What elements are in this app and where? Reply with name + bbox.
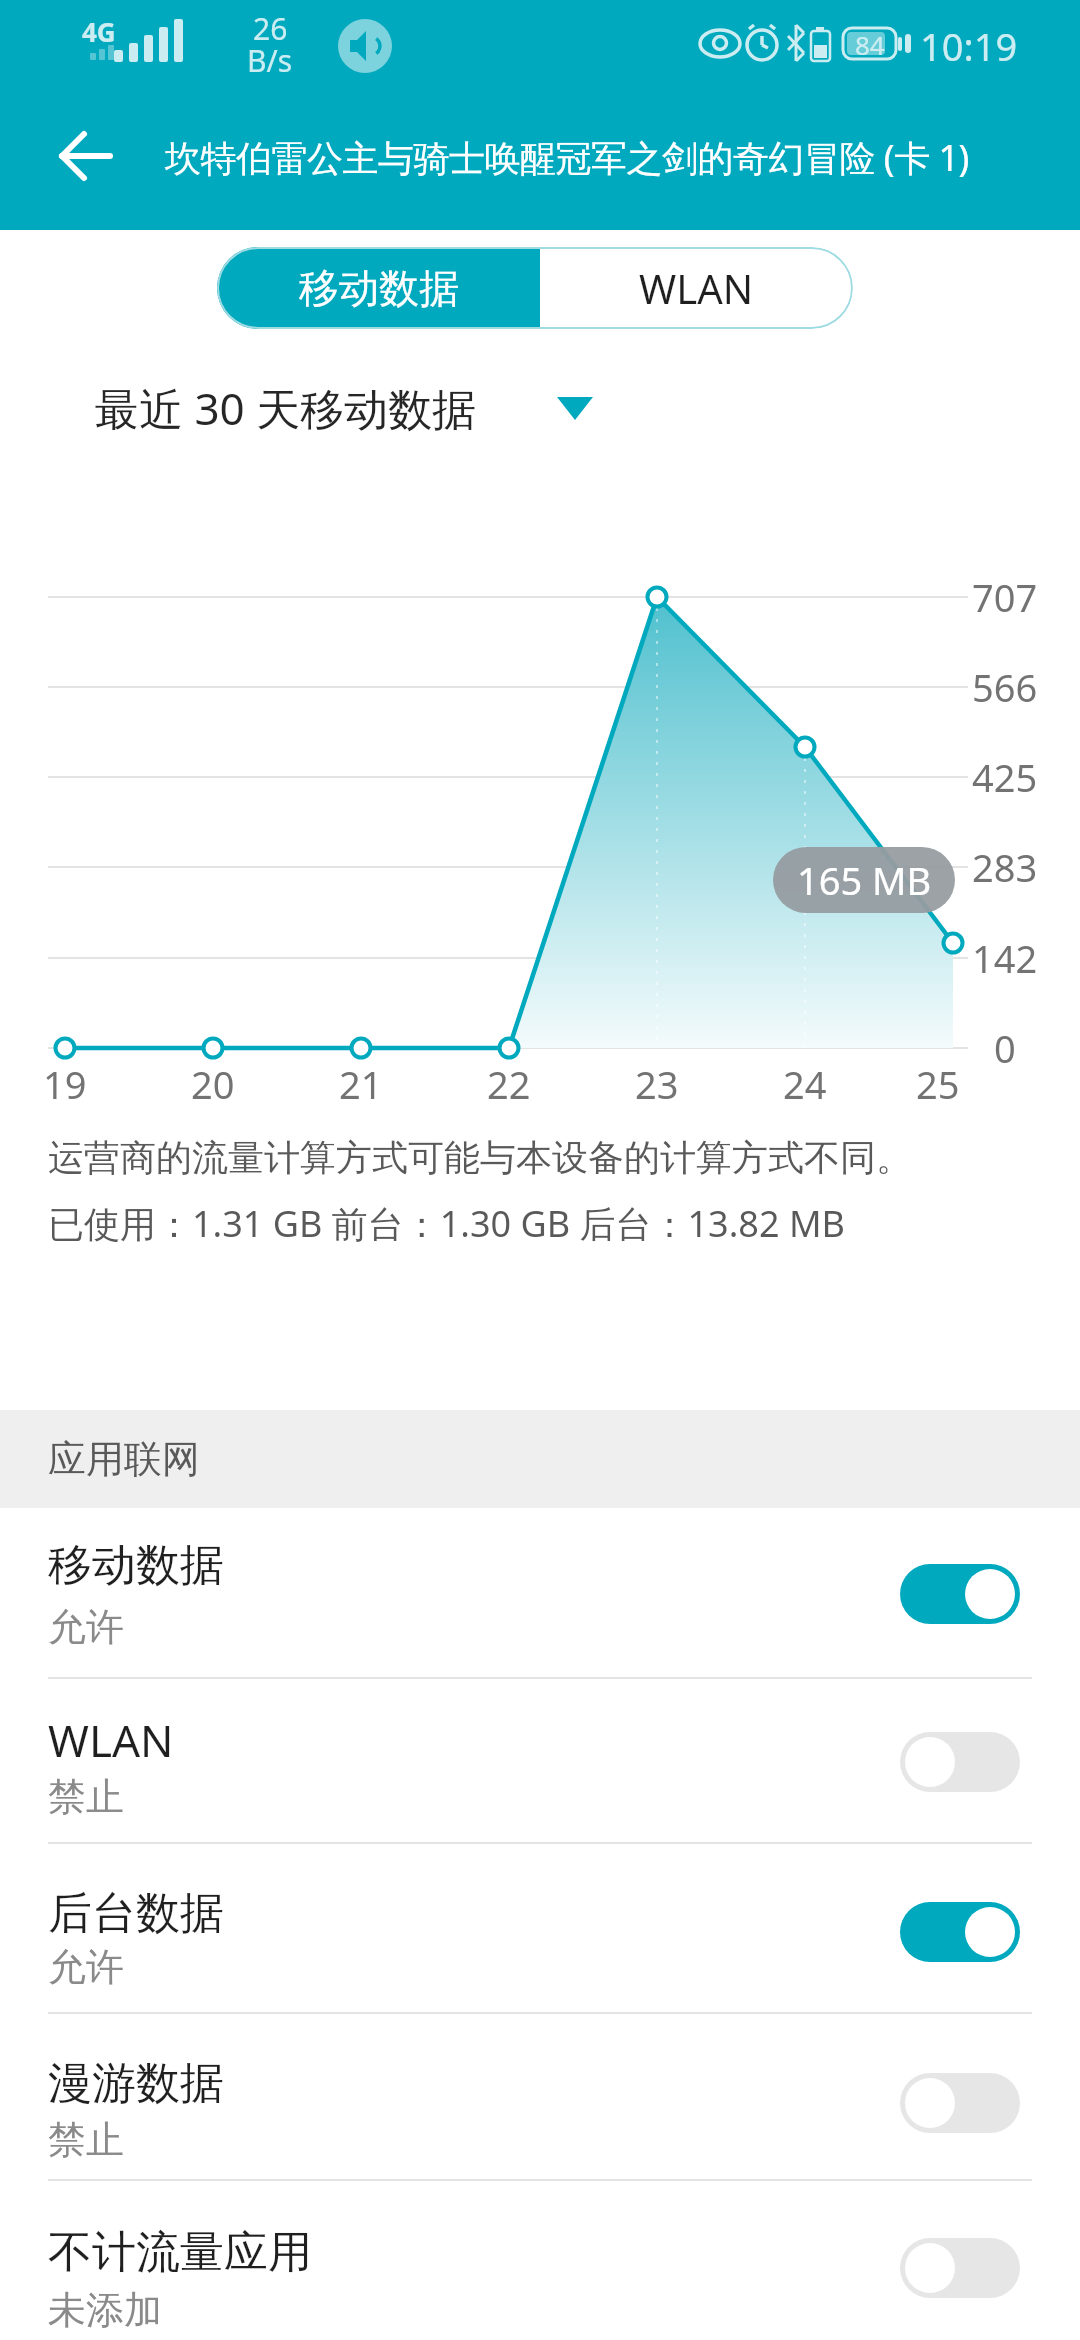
button[interactable]: 漫游数据 bbox=[0, 2013, 1080, 2180]
staticText: 后台数据 bbox=[48, 1886, 224, 1941]
button[interactable] bbox=[900, 1564, 1020, 1624]
staticText: 允许 bbox=[48, 1943, 124, 1991]
button[interactable]: 移动数据 bbox=[0, 1508, 1080, 1678]
staticText: 84 bbox=[855, 27, 885, 62]
staticText: 应用联网 bbox=[48, 1435, 200, 1483]
staticText: 不计流量应用 bbox=[48, 2225, 312, 2280]
staticText: 24 bbox=[783, 1058, 827, 1108]
staticText: WLAN bbox=[639, 261, 754, 315]
staticText: 707 bbox=[972, 571, 1038, 623]
staticText: 20 bbox=[191, 1058, 235, 1108]
staticText: 142 bbox=[972, 932, 1038, 984]
staticText: 未添加 bbox=[48, 2286, 162, 2334]
staticText: 最近 30 天移动数据 bbox=[95, 378, 477, 436]
staticText: 25 bbox=[916, 1058, 960, 1108]
staticText: 移动数据 bbox=[299, 263, 459, 313]
staticText: 已使用：1.31 GB 前台：1.30 GB 后台：13.82 MB bbox=[48, 1199, 845, 1248]
staticText: 4G bbox=[82, 14, 116, 48]
staticText: 10:19 bbox=[920, 20, 1018, 68]
button[interactable]: WLAN bbox=[540, 247, 853, 329]
staticText: 0 bbox=[994, 1022, 1016, 1074]
staticText: 425 bbox=[972, 751, 1038, 803]
staticText: 禁止 bbox=[48, 2116, 124, 2164]
button[interactable]: 不计流量应用 bbox=[0, 2180, 1080, 2340]
staticText: 283 bbox=[972, 841, 1038, 893]
staticText: 165 MB bbox=[797, 854, 932, 906]
button[interactable]: 移动数据 bbox=[217, 247, 540, 329]
button[interactable]: WLAN bbox=[0, 1678, 1080, 1843]
staticText: 23 bbox=[635, 1058, 679, 1108]
button[interactable] bbox=[900, 1902, 1020, 1962]
button[interactable] bbox=[900, 1732, 1020, 1792]
staticText: 19 bbox=[43, 1058, 87, 1108]
staticText: 禁止 bbox=[48, 1773, 124, 1821]
staticText: 26 bbox=[253, 8, 288, 44]
staticText: 漫游数据 bbox=[48, 2056, 224, 2111]
staticText: B/s bbox=[247, 40, 293, 74]
button[interactable]: 后台数据 bbox=[0, 1843, 1080, 2013]
button[interactable] bbox=[900, 2238, 1020, 2298]
staticText: 22 bbox=[487, 1058, 531, 1108]
button[interactable] bbox=[900, 2073, 1020, 2133]
staticText: 运营商的流量计算方式可能与本设备的计算方式不同。 bbox=[48, 1135, 912, 1180]
staticText: 21 bbox=[339, 1058, 383, 1108]
staticText: 566 bbox=[972, 661, 1038, 713]
staticText: WLAN bbox=[48, 1710, 174, 1770]
staticText: 坎特伯雷公主与骑士唤醒冠军之剑的奇幻冒险 (卡 1) bbox=[165, 133, 969, 182]
staticText: 移动数据 bbox=[48, 1538, 224, 1593]
staticText: 允许 bbox=[48, 1603, 124, 1651]
